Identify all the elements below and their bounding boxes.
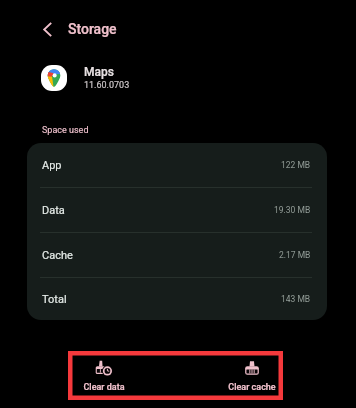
button[interactable]: Cache — [27, 233, 327, 278]
staticText: Space used — [42, 125, 89, 136]
button[interactable]: App — [27, 143, 327, 188]
staticText: 143 MB — [281, 294, 311, 304]
staticText: Clear cache — [228, 382, 276, 393]
staticText: 2.17 MB — [279, 250, 311, 260]
button[interactable]: Total — [27, 278, 327, 320]
staticText: Clear data — [83, 382, 125, 393]
button[interactable]: Back — [34, 16, 60, 42]
staticText: 122 MB — [281, 160, 311, 170]
staticText: Maps — [84, 65, 114, 79]
staticText: Total — [42, 293, 67, 306]
staticText: 19.30 MB — [274, 205, 311, 215]
button[interactable]: Clear data — [68, 351, 140, 401]
staticText: 11.60.0703 — [84, 80, 130, 91]
button[interactable]: Clear cache — [216, 351, 288, 401]
staticText: Storage — [68, 21, 117, 37]
staticText: Cache — [42, 249, 73, 262]
staticText: App — [42, 159, 62, 172]
staticText: Data — [42, 204, 65, 217]
button[interactable]: Data — [27, 188, 327, 233]
